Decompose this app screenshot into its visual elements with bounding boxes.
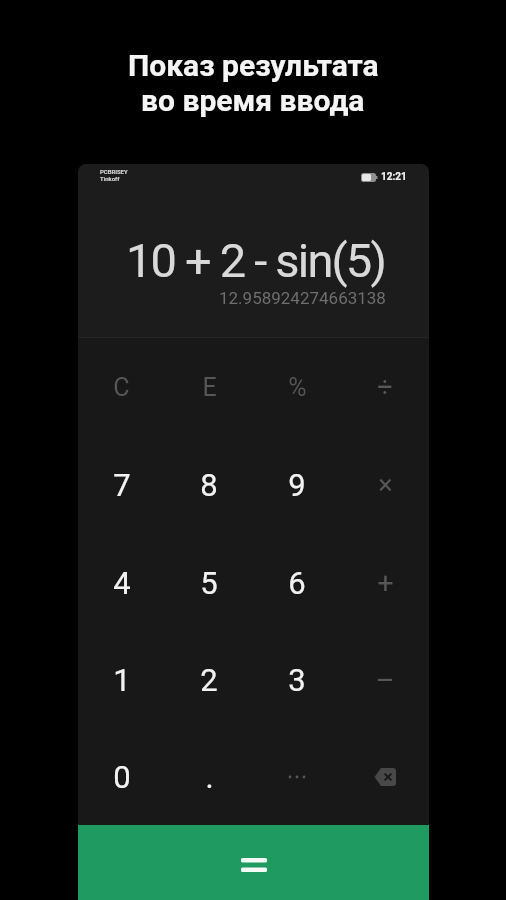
staticText: 12:21 bbox=[381, 171, 407, 183]
staticText: 6 bbox=[288, 565, 306, 601]
staticText: 1 bbox=[113, 662, 131, 698]
button[interactable]: 8 bbox=[165, 436, 253, 534]
staticText: 10 + 2 - sin(5) bbox=[126, 233, 386, 288]
staticText: Tinkoff bbox=[100, 175, 120, 182]
button[interactable]: ÷ bbox=[341, 338, 429, 436]
staticText: E bbox=[202, 373, 217, 402]
staticText: 5 bbox=[200, 565, 218, 601]
button[interactable]: 1 bbox=[78, 631, 165, 728]
button[interactable]: 3 bbox=[253, 631, 341, 728]
staticText: ÷ bbox=[377, 371, 393, 403]
button[interactable]: + bbox=[341, 534, 429, 631]
staticText: C bbox=[113, 373, 130, 402]
button[interactable]: E bbox=[165, 338, 253, 436]
staticText: × bbox=[378, 469, 393, 501]
staticText: % bbox=[288, 373, 307, 402]
button[interactable]: 4 bbox=[78, 534, 165, 631]
button[interactable]: × bbox=[341, 436, 429, 534]
staticText: 0 bbox=[113, 759, 131, 795]
staticText: 12.958924274663138 bbox=[219, 288, 386, 308]
staticText: 8 bbox=[200, 467, 218, 503]
button[interactable]: 7 bbox=[78, 436, 165, 534]
button[interactable]: 9 bbox=[253, 436, 341, 534]
button[interactable]: . bbox=[165, 728, 253, 825]
staticText: PCBRISEY bbox=[100, 168, 128, 175]
button[interactable]: 6 bbox=[253, 534, 341, 631]
button[interactable]: – bbox=[341, 631, 429, 728]
button[interactable]: % bbox=[253, 338, 341, 436]
button[interactable]: 5 bbox=[165, 534, 253, 631]
button[interactable] bbox=[341, 728, 429, 825]
staticText: во время ввода bbox=[141, 83, 365, 118]
staticText: 4 bbox=[113, 565, 131, 601]
staticText: + bbox=[377, 566, 394, 600]
staticText: Показ результата bbox=[128, 48, 379, 83]
button[interactable] bbox=[78, 825, 429, 900]
staticText: 7 bbox=[113, 467, 131, 503]
staticText: 2 bbox=[200, 662, 218, 698]
button[interactable]: 2 bbox=[165, 631, 253, 728]
button[interactable]: 0 bbox=[78, 728, 165, 825]
staticText: 3 bbox=[288, 662, 306, 698]
staticText: 9 bbox=[288, 467, 306, 503]
staticText: – bbox=[375, 663, 395, 697]
staticText: . bbox=[205, 759, 214, 795]
button[interactable]: C bbox=[78, 338, 165, 436]
